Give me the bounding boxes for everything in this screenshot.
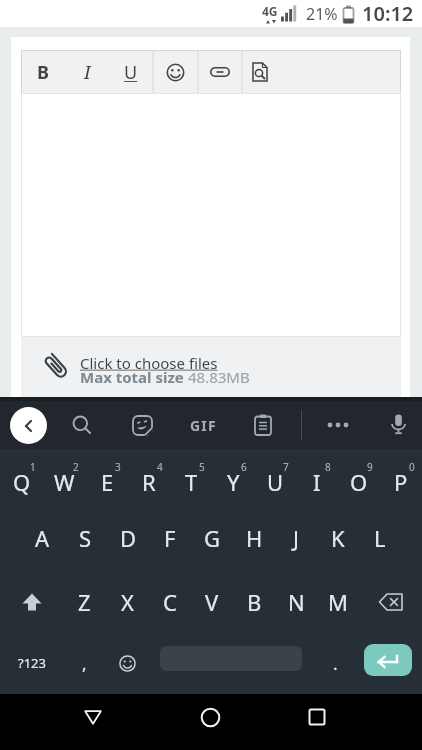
staticText: T (185, 467, 198, 497)
button[interactable]: Z (63, 572, 106, 632)
button[interactable]: I (65, 50, 109, 94)
staticText: N (288, 587, 305, 617)
staticText: 10:12 (362, 0, 414, 27)
button[interactable]: V (191, 572, 233, 632)
staticText: 4G (262, 3, 278, 19)
staticText: 3 (115, 460, 121, 474)
staticText: ?123 (18, 654, 46, 672)
button[interactable]: F (149, 508, 191, 568)
staticText: Z (78, 587, 91, 617)
staticText: D (120, 523, 137, 553)
button[interactable]: O (338, 452, 380, 512)
button[interactable]: N (275, 572, 317, 632)
staticText: 8 (325, 460, 331, 474)
button[interactable] (64, 407, 100, 443)
staticText: , (82, 652, 87, 675)
button[interactable]: C (149, 572, 191, 632)
staticText: I (313, 467, 321, 497)
staticText: H (246, 523, 263, 553)
button[interactable]: K (317, 508, 359, 568)
button[interactable]: S (64, 508, 107, 568)
button[interactable]: U (109, 50, 153, 94)
button[interactable] (359, 572, 422, 632)
button[interactable] (21, 93, 401, 337)
button[interactable]: B (21, 50, 65, 94)
button[interactable] (0, 572, 63, 632)
button[interactable]: J (275, 508, 317, 568)
button[interactable]: GIF (183, 407, 223, 443)
staticText: I (84, 60, 91, 85)
staticText: 6 (241, 460, 247, 474)
staticText: R (142, 467, 156, 497)
staticText: Y (227, 467, 240, 497)
button[interactable] (295, 695, 339, 739)
staticText: 2 (73, 460, 79, 474)
button[interactable]: Q (0, 452, 43, 512)
button[interactable] (153, 50, 198, 94)
button[interactable]: G (191, 508, 233, 568)
staticText: U (124, 60, 138, 85)
button[interactable] (242, 50, 287, 94)
button[interactable]: B (233, 572, 275, 632)
button[interactable] (124, 407, 160, 443)
staticText: P (394, 467, 408, 497)
button[interactable]: Y (212, 452, 254, 512)
staticText: V (205, 587, 219, 617)
button[interactable]: Click to choose files (80, 353, 218, 373)
staticText: O (350, 467, 368, 497)
button[interactable]: U (254, 452, 296, 512)
staticText: 21% (306, 3, 338, 25)
button[interactable] (10, 407, 47, 444)
button[interactable]: T (170, 452, 212, 512)
staticText: L (374, 523, 386, 553)
staticText: C (163, 587, 177, 617)
button[interactable] (245, 407, 281, 443)
button[interactable]: ?123 (0, 632, 63, 694)
staticText: W (54, 467, 75, 497)
button[interactable]: D (107, 508, 149, 568)
button[interactable]: R (128, 452, 170, 512)
staticText: 48.83MB (188, 367, 250, 387)
button[interactable] (106, 632, 149, 694)
button[interactable]: . (315, 632, 355, 694)
staticText: Max total size (80, 367, 188, 387)
staticText: U (267, 467, 284, 497)
staticText: . (333, 652, 338, 675)
button[interactable]: , (63, 632, 106, 694)
button[interactable] (71, 695, 115, 739)
button[interactable]: M (317, 572, 359, 632)
button[interactable]: H (233, 508, 275, 568)
button[interactable]: A (21, 508, 64, 568)
staticText: E (101, 467, 114, 497)
staticText: 4 (157, 460, 163, 474)
staticText: S (79, 523, 92, 553)
button[interactable]: L (359, 508, 401, 568)
staticText: A (35, 523, 50, 553)
staticText: 5 (199, 460, 205, 474)
staticText: X (121, 587, 134, 617)
staticText: 1 (30, 460, 36, 474)
button[interactable] (364, 644, 412, 676)
staticText: M (328, 587, 348, 617)
button[interactable] (320, 407, 356, 443)
button[interactable]: E (86, 452, 128, 512)
staticText: G (204, 523, 221, 553)
staticText: GIF (190, 416, 217, 435)
button[interactable] (380, 407, 416, 443)
staticText: J (293, 523, 300, 553)
button[interactable] (188, 695, 232, 739)
staticText: F (164, 523, 176, 553)
button[interactable] (198, 50, 242, 94)
staticText: B (247, 587, 262, 617)
button[interactable]: X (106, 572, 149, 632)
button[interactable]: I (296, 452, 338, 512)
staticText: B (37, 60, 49, 85)
staticText: 9 (367, 460, 373, 474)
button[interactable]: P (380, 452, 422, 512)
button[interactable]: W (43, 452, 86, 512)
staticText: K (331, 523, 345, 553)
staticText: 7 (283, 460, 289, 474)
staticText: Q (13, 467, 31, 497)
staticText: 0 (409, 460, 415, 474)
